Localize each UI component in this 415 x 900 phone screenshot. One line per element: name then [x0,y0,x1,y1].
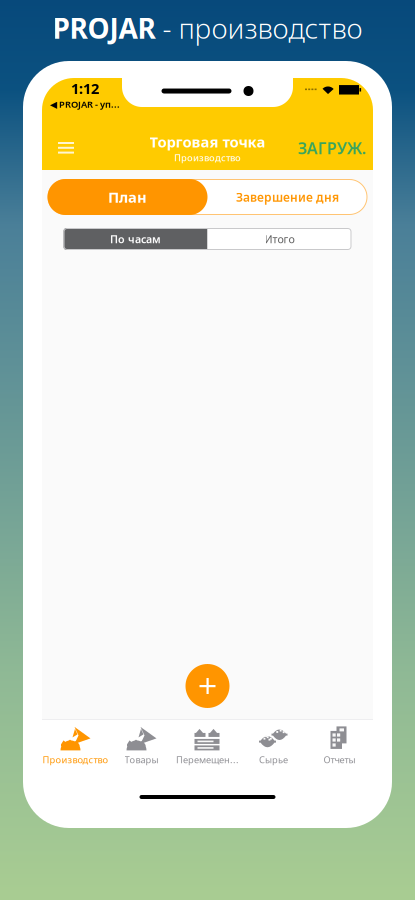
staticText: Сырье [259,753,288,766]
button[interactable]: Итого [207,228,351,250]
staticText: По часам [110,232,161,246]
staticText: PROJAR [52,9,155,47]
button[interactable]: Добавить [185,664,229,708]
staticText: Производство [174,151,241,164]
staticText: Торговая точка [149,132,265,152]
staticText: План [108,187,147,207]
staticText: Товары [124,753,158,766]
button[interactable]: Отчеты [306,724,372,768]
button[interactable]: Сырье [240,724,306,768]
button[interactable]: Завершение дня [207,179,367,215]
staticText: ◀ PROJAR - уп... [50,98,120,110]
button[interactable]: ЗАГРУЖ. [298,131,373,165]
staticText: Перемещен... [176,753,239,766]
staticText: Итого [264,232,294,246]
button[interactable]: Меню [42,131,90,165]
button[interactable]: Перемещен... [174,724,240,768]
staticText: Производство [42,753,108,766]
staticText: ЗАГРУЖ. [298,137,366,159]
button[interactable]: Производство [42,724,108,768]
button[interactable]: По часам [63,228,207,250]
staticText: 1:12 [71,79,99,98]
button[interactable]: Товары [108,724,174,768]
staticText: - производство [155,9,362,47]
staticText: Завершение дня [236,189,339,205]
button[interactable]: План [47,179,207,215]
staticText: Отчеты [323,753,355,766]
